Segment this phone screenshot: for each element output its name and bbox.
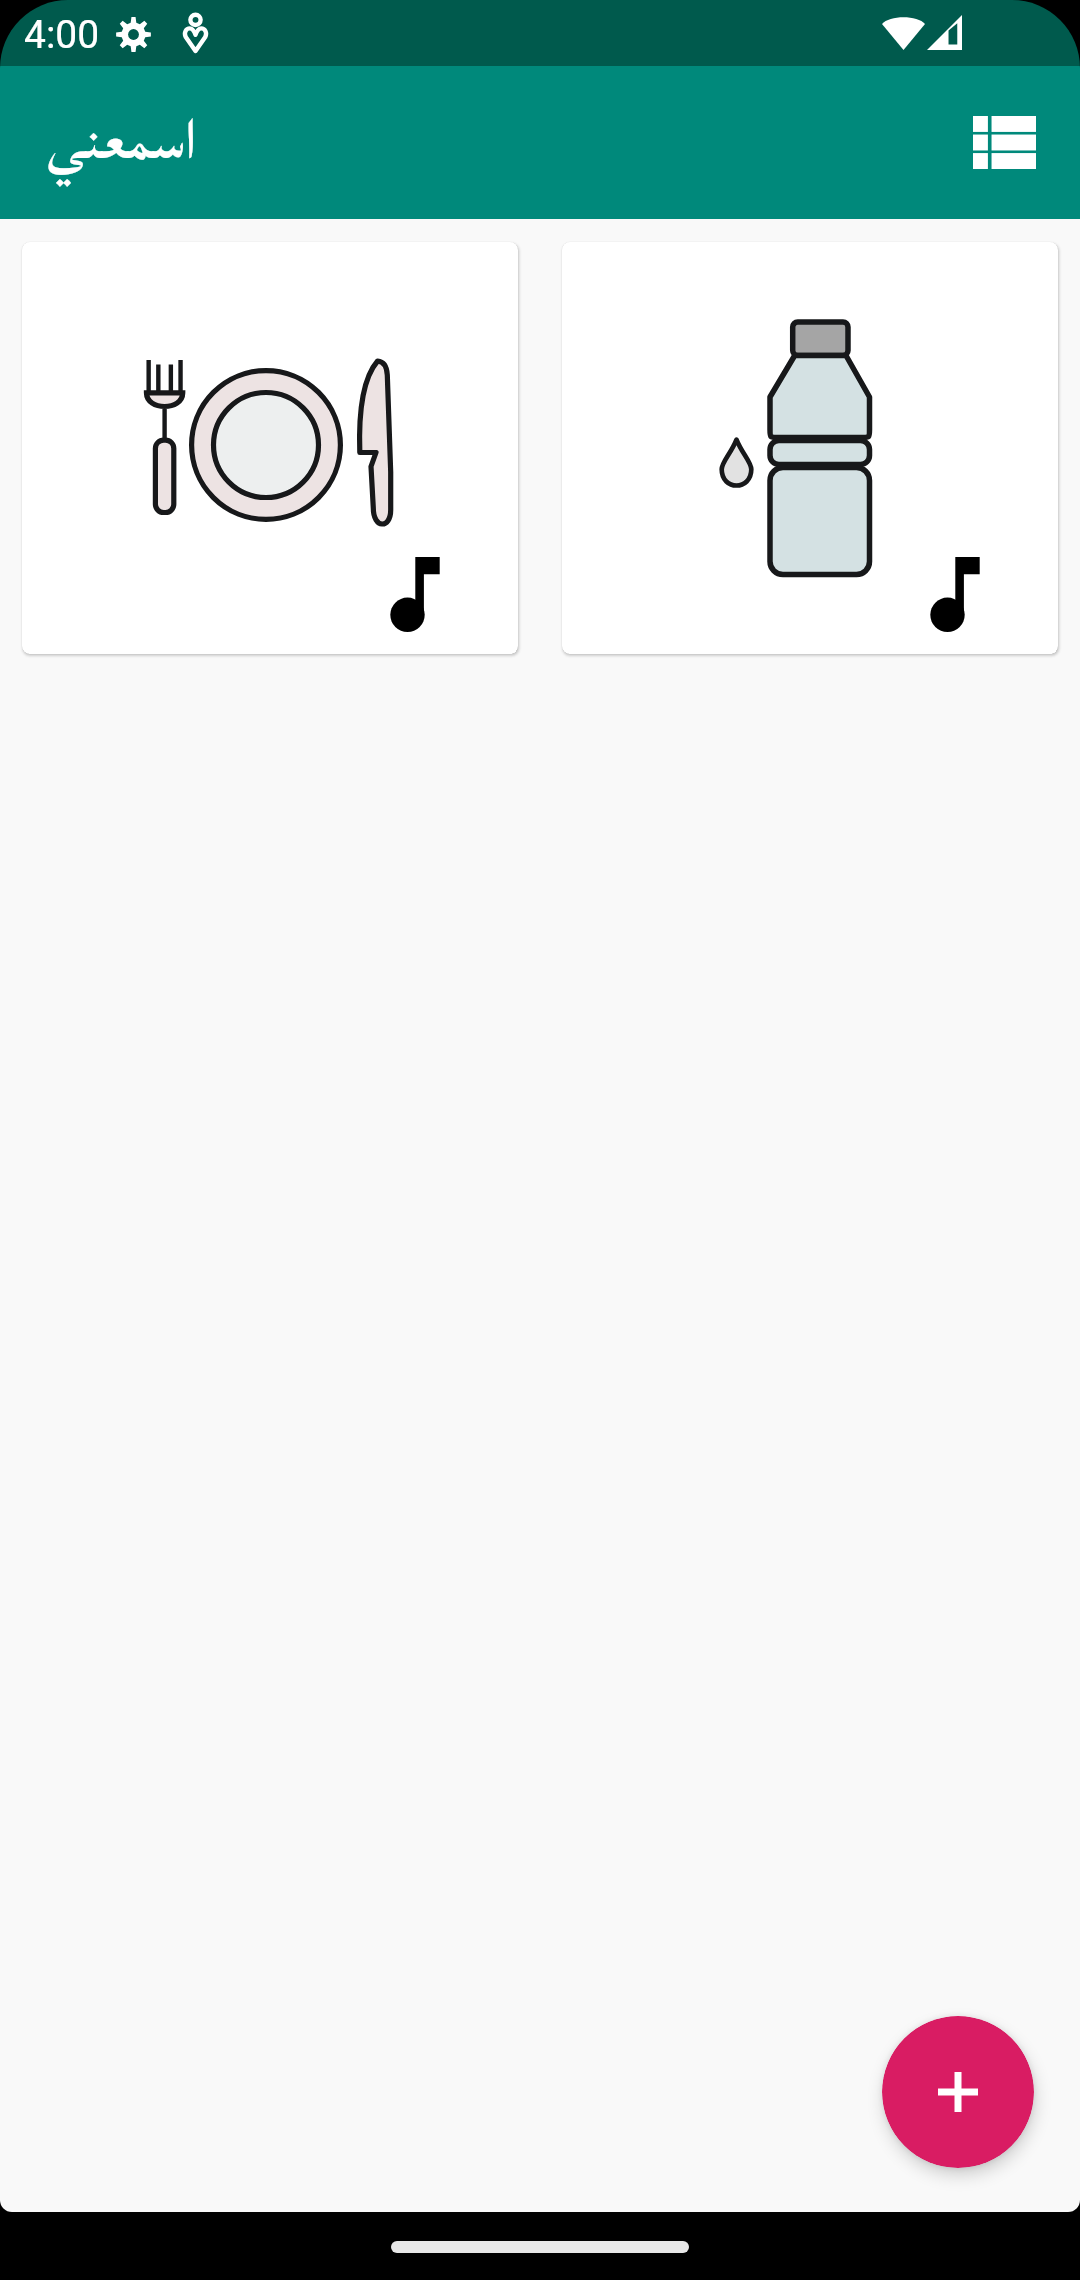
staticText: اسمعني bbox=[47, 87, 198, 195]
button[interactable]: List view bbox=[956, 95, 1052, 191]
button[interactable] bbox=[22, 242, 518, 654]
staticText: 4:00 bbox=[24, 12, 100, 58]
button[interactable] bbox=[562, 242, 1058, 654]
button[interactable]: Add bbox=[882, 2016, 1034, 2168]
